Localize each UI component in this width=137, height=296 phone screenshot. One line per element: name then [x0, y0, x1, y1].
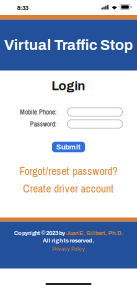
staticText: Virtual Traffic Stop [4, 37, 133, 53]
staticText: Mobile Phone: [20, 107, 57, 116]
staticText: Privacy Policy [52, 244, 85, 253]
staticText: 8:33 [17, 5, 28, 11]
staticText: Juan E. Gilbert, Ph.D. [66, 230, 123, 236]
staticText: Copyright © 2023 by [14, 230, 66, 236]
staticText: Forgot/reset password? [19, 163, 117, 179]
staticText: All rights reserved. [42, 237, 94, 244]
button[interactable]: Forgot/reset password? [19, 163, 117, 179]
staticText: Submit [56, 143, 81, 151]
staticText: Create driver account [23, 181, 114, 196]
button[interactable]: Submit [52, 142, 85, 152]
button[interactable]: Create driver account [23, 181, 114, 196]
button[interactable]: Privacy Policy [52, 244, 85, 253]
staticText: Login [51, 79, 85, 93]
staticText: Password: [30, 119, 57, 128]
